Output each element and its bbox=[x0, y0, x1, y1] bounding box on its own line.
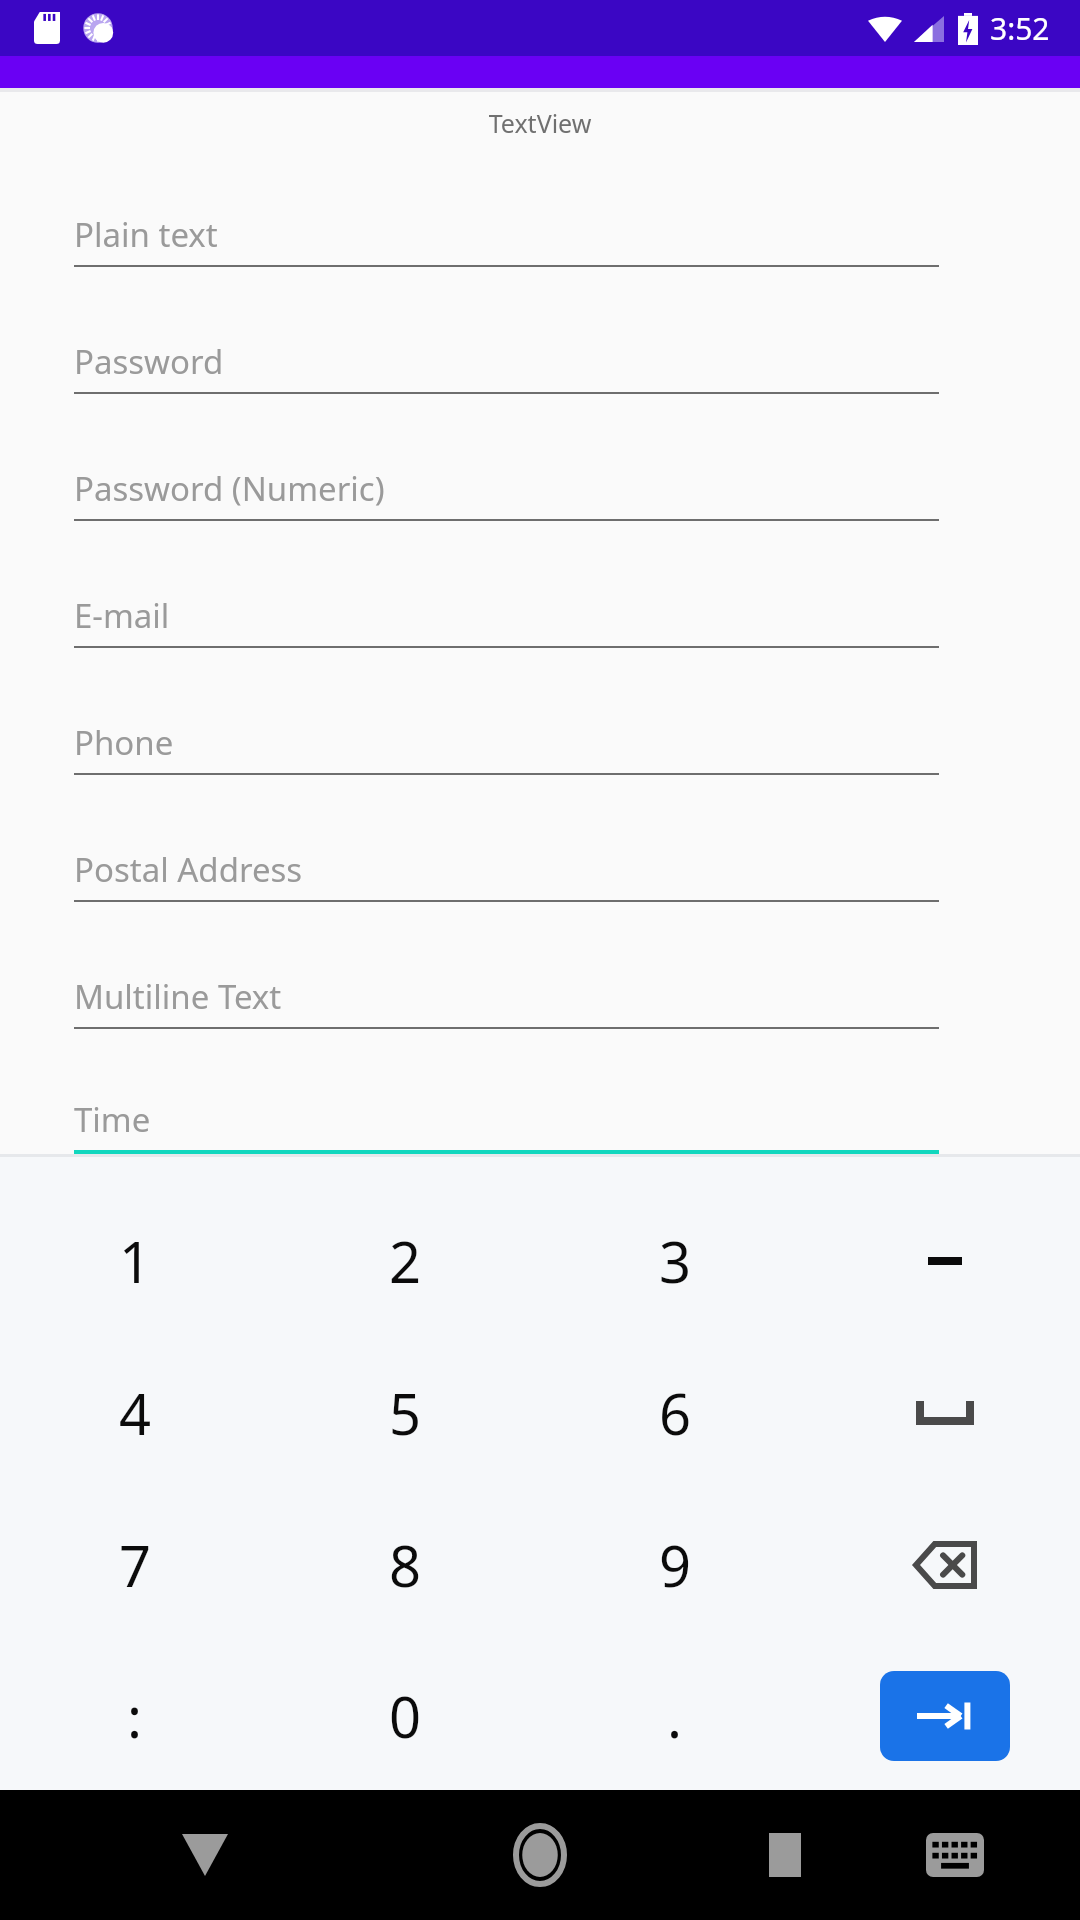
button[interactable]: 4 bbox=[0, 1337, 270, 1489]
button[interactable]: 9 bbox=[540, 1489, 810, 1641]
staticText: 9 bbox=[659, 1527, 692, 1603]
button[interactable]: . bbox=[540, 1641, 810, 1790]
button[interactable]: Password (Numeric) bbox=[74, 418, 939, 521]
staticText: 4 bbox=[119, 1375, 152, 1451]
button[interactable]: Recents bbox=[740, 1810, 830, 1900]
button[interactable]: Phone bbox=[74, 672, 939, 775]
staticText: 5 bbox=[389, 1375, 422, 1451]
staticText: 1 bbox=[119, 1223, 152, 1299]
staticText: 7 bbox=[119, 1527, 152, 1603]
staticText: Plain text bbox=[74, 212, 218, 257]
staticText: : bbox=[127, 1678, 143, 1754]
button[interactable]: 7 bbox=[0, 1489, 270, 1641]
staticText: Phone bbox=[74, 720, 174, 765]
staticText: 8 bbox=[389, 1527, 422, 1603]
staticText: E-mail bbox=[74, 593, 170, 638]
button[interactable]: Plain text bbox=[74, 164, 939, 267]
button[interactable]: 2 bbox=[270, 1185, 540, 1337]
staticText: 3:52 bbox=[990, 8, 1050, 49]
button[interactable]: Password bbox=[74, 291, 939, 394]
button[interactable]: E-mail bbox=[74, 545, 939, 648]
button[interactable]: Backspace bbox=[885, 1515, 1005, 1615]
button[interactable]: : bbox=[0, 1641, 270, 1790]
button[interactable]: 1 bbox=[0, 1185, 270, 1337]
button[interactable]: Switch keyboard bbox=[910, 1810, 1000, 1900]
button[interactable]: Time bbox=[74, 1053, 939, 1154]
button[interactable]: Postal Address bbox=[74, 799, 939, 902]
button[interactable]: Home bbox=[490, 1805, 590, 1905]
button[interactable]: 3 bbox=[540, 1185, 810, 1337]
button[interactable]: Space bbox=[885, 1363, 1005, 1463]
button[interactable]: 8 bbox=[270, 1489, 540, 1641]
button[interactable]: 5 bbox=[270, 1337, 540, 1489]
staticText: Password bbox=[74, 339, 224, 384]
button[interactable]: Minus bbox=[895, 1211, 995, 1311]
staticText: 6 bbox=[659, 1375, 692, 1451]
staticText: Multiline Text bbox=[74, 974, 282, 1019]
staticText: . bbox=[667, 1678, 683, 1754]
staticText: Password (Numeric) bbox=[74, 466, 385, 511]
button[interactable]: Hide keyboard bbox=[160, 1810, 250, 1900]
staticText: Time bbox=[74, 1097, 151, 1142]
button[interactable]: Enter bbox=[880, 1671, 1010, 1761]
staticText: 0 bbox=[389, 1678, 422, 1754]
button[interactable]: 6 bbox=[540, 1337, 810, 1489]
staticText: 3 bbox=[659, 1223, 692, 1299]
staticText: Postal Address bbox=[74, 847, 303, 892]
button[interactable]: Multiline Text bbox=[74, 926, 939, 1029]
staticText: 2 bbox=[389, 1223, 422, 1299]
button[interactable]: 0 bbox=[270, 1641, 540, 1790]
staticText: TextView bbox=[0, 106, 1080, 140]
